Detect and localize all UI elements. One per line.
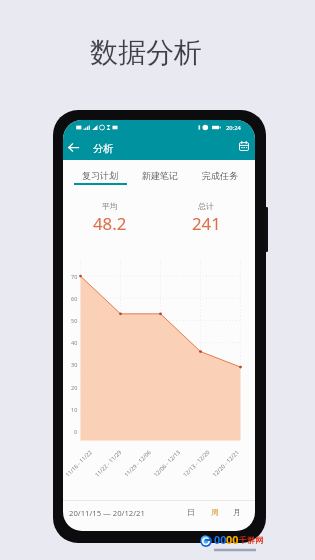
button[interactable]: 平均 <box>63 189 158 246</box>
button[interactable]: 复习计划 <box>71 160 130 189</box>
staticText: 月 <box>233 507 241 517</box>
staticText: 00 <box>214 532 227 547</box>
button[interactable]: 月 <box>226 502 248 522</box>
staticText: 48.2 <box>93 212 127 235</box>
staticText: 总计 <box>198 201 214 211</box>
button[interactable]: 总计 <box>158 189 254 246</box>
staticText: 完成任务 <box>202 170 238 181</box>
button[interactable]: 周 <box>204 502 226 522</box>
staticText: 分析 <box>93 142 114 155</box>
button[interactable]: 日 <box>180 502 202 522</box>
staticText: 千群网 <box>239 535 263 545</box>
staticText: 日 <box>187 507 195 517</box>
button[interactable]: Calendar <box>234 136 253 155</box>
staticText: 复习计划 <box>82 170 118 181</box>
staticText: 241 <box>192 212 221 235</box>
staticText: 20:24 <box>226 124 241 132</box>
button[interactable]: 完成任务 <box>191 160 250 189</box>
staticText: 新建笔记 <box>142 170 178 181</box>
button[interactable]: Back <box>64 138 83 157</box>
staticText: 20/11/15 — 20/12/21 <box>69 508 145 518</box>
staticText: 数据分析 <box>90 35 202 70</box>
staticText: 周 <box>211 507 219 517</box>
button[interactable]: 新建笔记 <box>131 160 190 189</box>
staticText: 00 <box>226 532 239 547</box>
staticText: 平均 <box>102 201 118 211</box>
